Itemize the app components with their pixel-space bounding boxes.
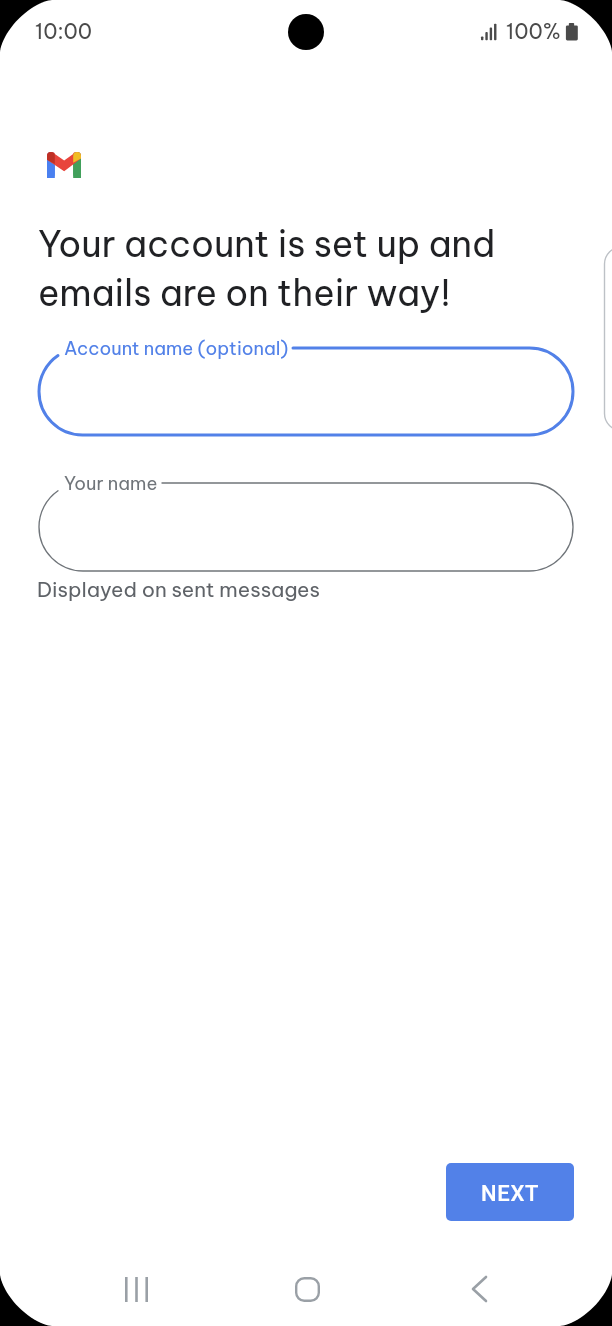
staticText: NEXT [481, 1181, 540, 1207]
staticText: Your account is set up and emails are on… [38, 221, 496, 315]
button[interactable]: Recent apps [109, 1262, 163, 1316]
button[interactable] [0, 318, 612, 465]
button[interactable]: Back [452, 1262, 506, 1316]
button[interactable] [0, 453, 612, 601]
staticText: 10:00 [35, 18, 93, 45]
button[interactable]: Home [280, 1262, 334, 1316]
button[interactable]: NEXT [446, 1163, 574, 1221]
staticText: Displayed on sent messages [37, 576, 321, 602]
staticText: 100% [506, 18, 561, 45]
